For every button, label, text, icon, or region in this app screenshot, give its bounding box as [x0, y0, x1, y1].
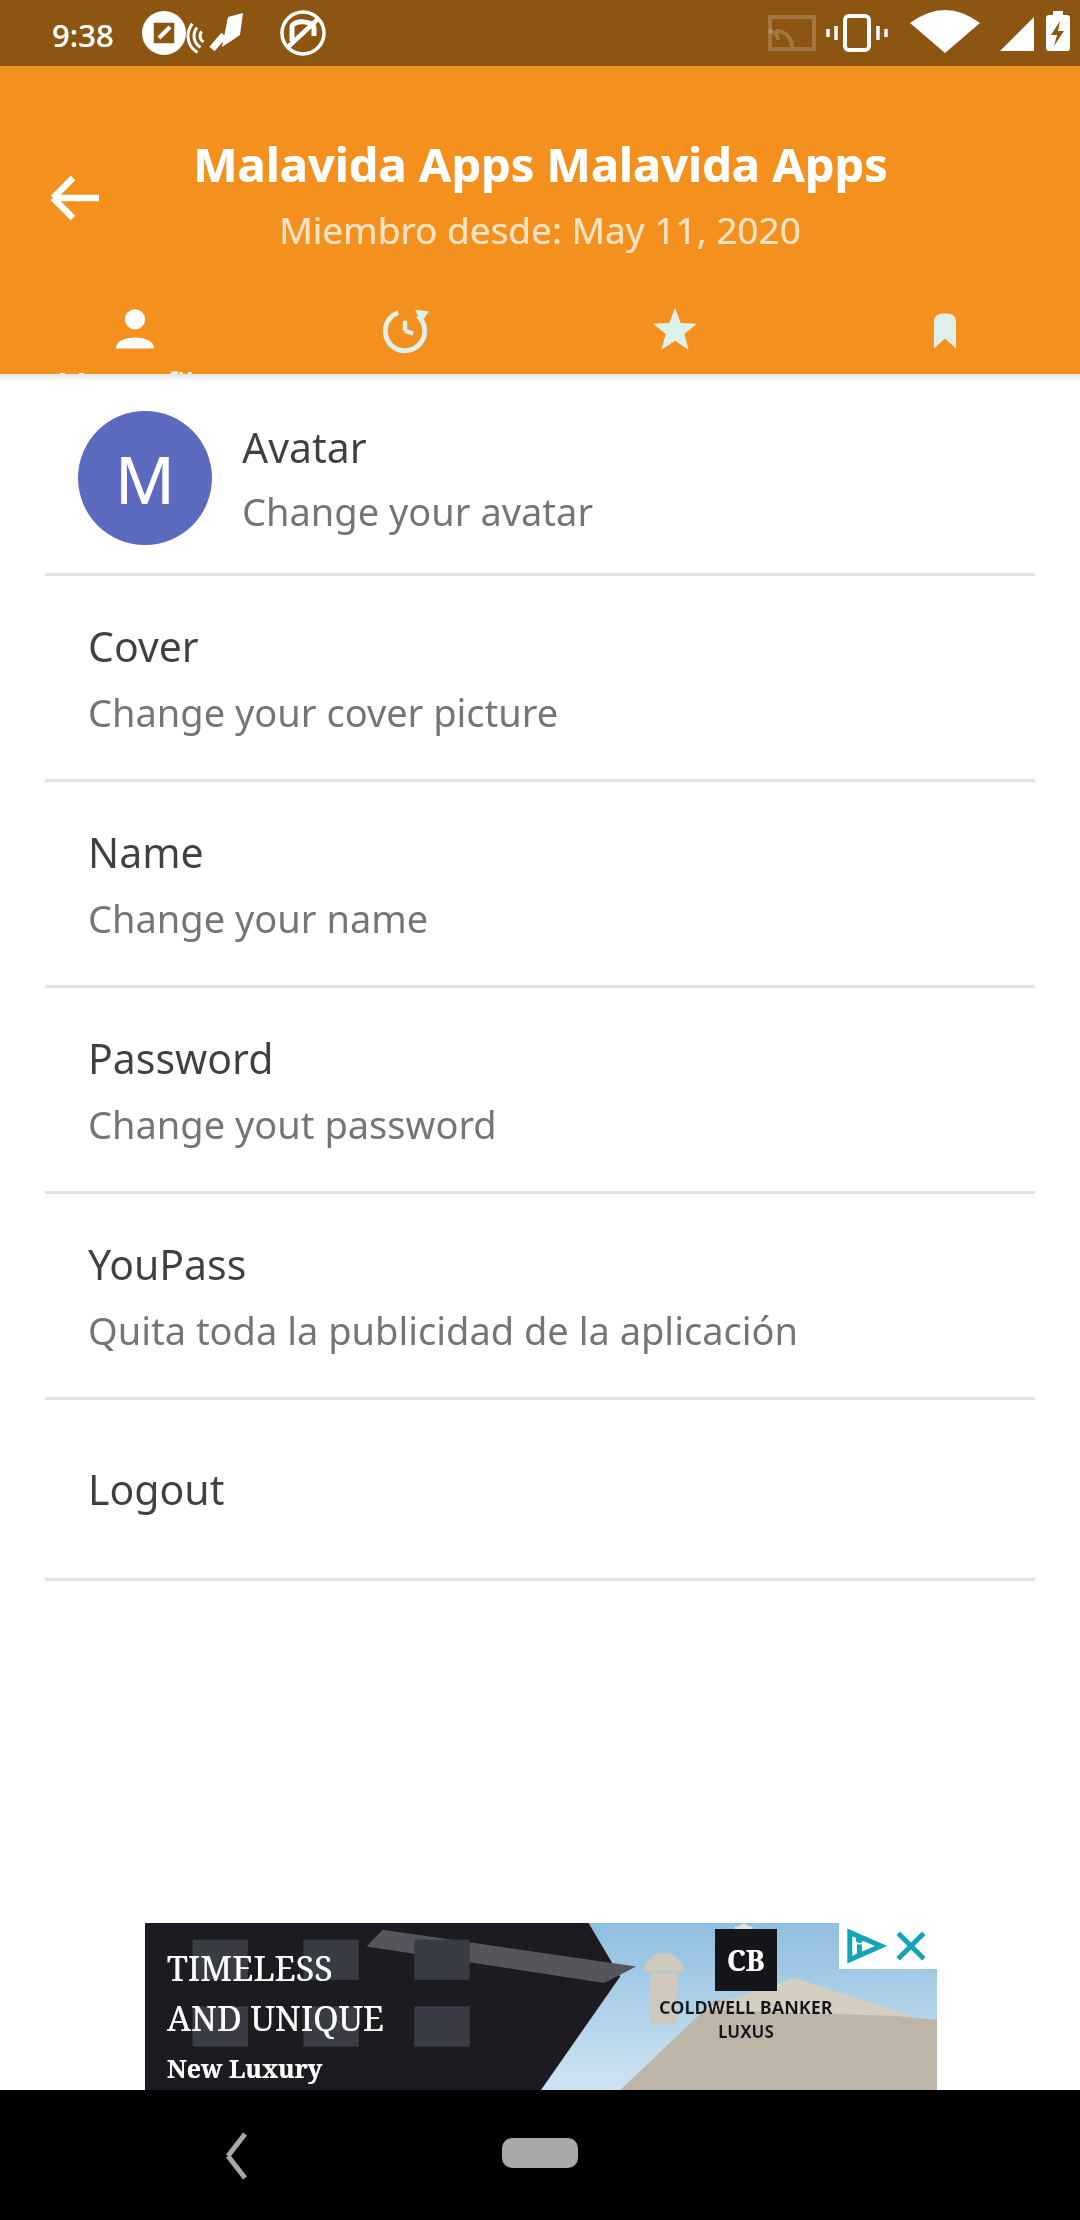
button[interactable]: Ad choices [845, 1926, 885, 1966]
staticText: AND UNIQUE [167, 1995, 385, 2041]
staticText: Password [88, 1030, 274, 1086]
staticText: LUXUS [718, 2020, 774, 2043]
staticText: Change your name [88, 892, 429, 944]
staticText: Change your cover picture [88, 686, 559, 738]
staticText: Change yout password [88, 1098, 497, 1150]
button[interactable]: Bookmarks [810, 302, 1080, 374]
button[interactable]: Favourites [540, 302, 810, 374]
staticText: COLDWELL BANKER [659, 1995, 833, 2020]
staticText: New Luxury [167, 2051, 323, 2085]
button[interactable]: Logout [0, 1400, 1080, 1578]
staticText: CB [727, 1941, 765, 1979]
button[interactable]: Back [24, 146, 128, 250]
staticText: Name [88, 824, 204, 880]
button[interactable]: My profile [0, 302, 270, 374]
button[interactable]: Cover [0, 576, 1080, 779]
button[interactable]: Recent [270, 302, 540, 374]
staticText: My profile [57, 362, 213, 374]
button[interactable]: Name [0, 782, 1080, 985]
staticText: M [115, 433, 175, 523]
staticText: Cover [88, 618, 199, 674]
button[interactable]: Advertisement [145, 1923, 937, 2090]
staticText: Miembro desde: May 11, 2020 [279, 204, 801, 254]
staticText: Quita toda la publicidad de la aplicació… [88, 1304, 799, 1356]
staticText: TIMELESS [167, 1945, 333, 1991]
button[interactable]: Password [0, 988, 1080, 1191]
staticText: Malavida Apps Malavida Apps [193, 132, 888, 196]
staticText: Change your avatar [242, 485, 594, 537]
staticText: Logout [88, 1461, 225, 1517]
button[interactable]: Home [502, 2138, 578, 2168]
button[interactable]: YouPass [0, 1194, 1080, 1397]
staticText: YouPass [88, 1236, 247, 1292]
staticText: 9:38 [52, 14, 114, 56]
button[interactable]: M [0, 382, 1080, 573]
button[interactable]: Close ad [891, 1926, 931, 1966]
staticText: Avatar [242, 419, 367, 475]
button[interactable]: Back [200, 2120, 272, 2192]
